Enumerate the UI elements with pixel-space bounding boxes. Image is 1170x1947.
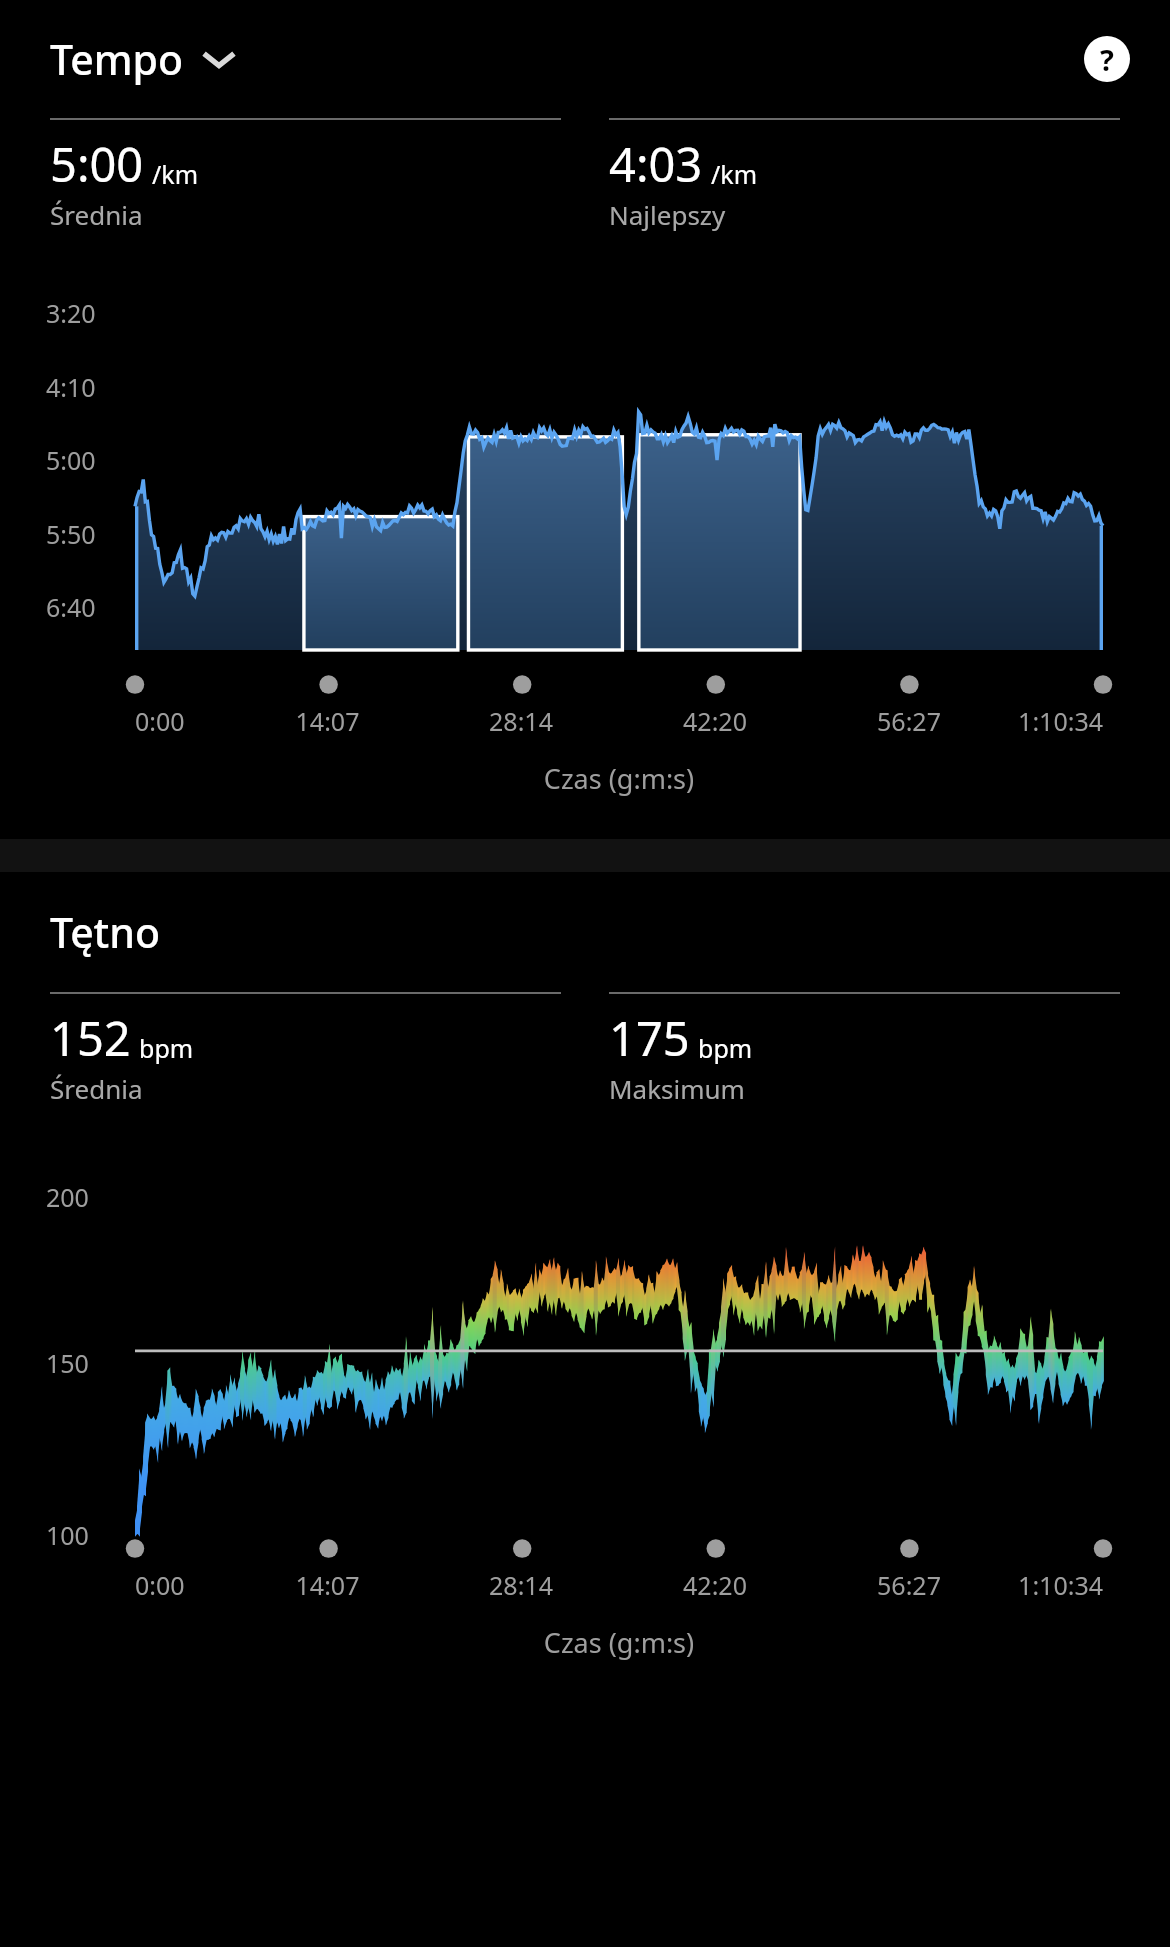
staticText: 42:20 [618,1568,812,1602]
staticText: Tętno [50,904,161,960]
staticText: 56:27 [812,1568,1006,1602]
staticText: ? [1100,40,1114,79]
staticText: bpm [698,1031,753,1065]
staticText: 1:10:34 [1006,704,1103,738]
staticText: 4:03 [609,132,703,196]
staticText: Czas (g:m:s) [135,1624,1103,1661]
staticText: 28:14 [424,704,618,738]
staticText: Maksimum [609,1071,745,1106]
staticText: 28:14 [424,1568,618,1602]
staticText: /km [711,157,758,191]
staticText: /km [152,157,199,191]
staticText: 5:50 [46,517,96,551]
staticText: 152 [50,1006,131,1070]
staticText: 0:00 [135,704,231,738]
staticText: 150 [46,1346,89,1380]
staticText: 14:07 [231,704,424,738]
staticText: Średnia [50,1071,143,1106]
staticText: 4:10 [46,370,96,404]
staticText: 14:07 [231,1568,424,1602]
staticText: 1:10:34 [1006,1568,1103,1602]
staticText: 56:27 [812,704,1006,738]
staticText: 100 [46,1518,89,1552]
staticText: Czas (g:m:s) [135,760,1103,797]
staticText: 5:00 [50,132,144,196]
staticText: bpm [139,1031,194,1065]
staticText: 5:00 [46,443,96,477]
staticText: Średnia [50,197,143,232]
button[interactable]: Tempo [50,31,236,87]
staticText: 6:40 [46,590,96,624]
staticText: 200 [46,1180,89,1214]
staticText: 175 [609,1006,690,1070]
staticText: 3:20 [46,296,96,330]
staticText: Tempo [50,31,184,87]
button[interactable]: Pomoc [1084,36,1130,82]
staticText: 42:20 [618,704,812,738]
staticText: Najlepszy [609,197,726,232]
button[interactable]: Tętno [50,904,161,960]
staticText: 0:00 [135,1568,231,1602]
